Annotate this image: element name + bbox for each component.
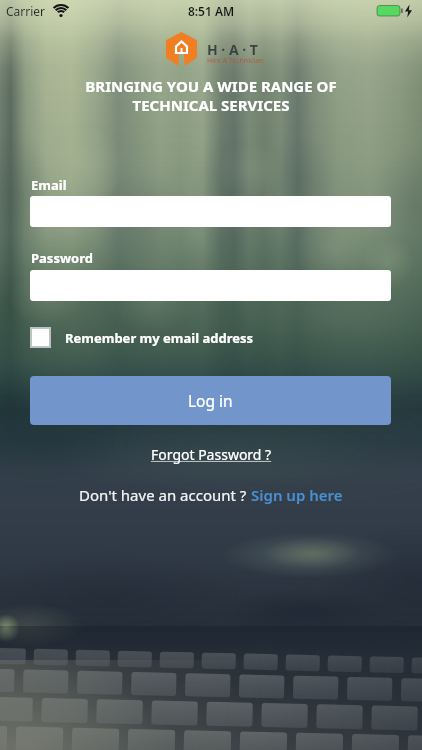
staticText: Carrier	[6, 3, 46, 19]
staticText: Remember my email address	[65, 329, 253, 347]
staticText: Hire A Technician	[207, 56, 264, 66]
staticText: Log in	[188, 390, 233, 411]
button[interactable]: Forgot Password ?	[151, 445, 272, 464]
staticText: Password	[31, 249, 93, 267]
staticText: Email	[31, 176, 67, 194]
staticText: H · A · T	[207, 40, 258, 59]
staticText: Don't have an account ?	[79, 485, 251, 505]
button[interactable]: Don't have an account ?	[79, 485, 343, 505]
button[interactable]: Remember my email address	[30, 327, 253, 348]
staticText: 8:51 AM	[0, 3, 422, 19]
button[interactable]	[30, 270, 391, 301]
staticText: BRINGING YOU A WIDE RANGE OF TECHNICAL S…	[0, 76, 422, 115]
button[interactable]: Log in	[30, 376, 391, 425]
staticText: Sign up here	[251, 485, 343, 505]
